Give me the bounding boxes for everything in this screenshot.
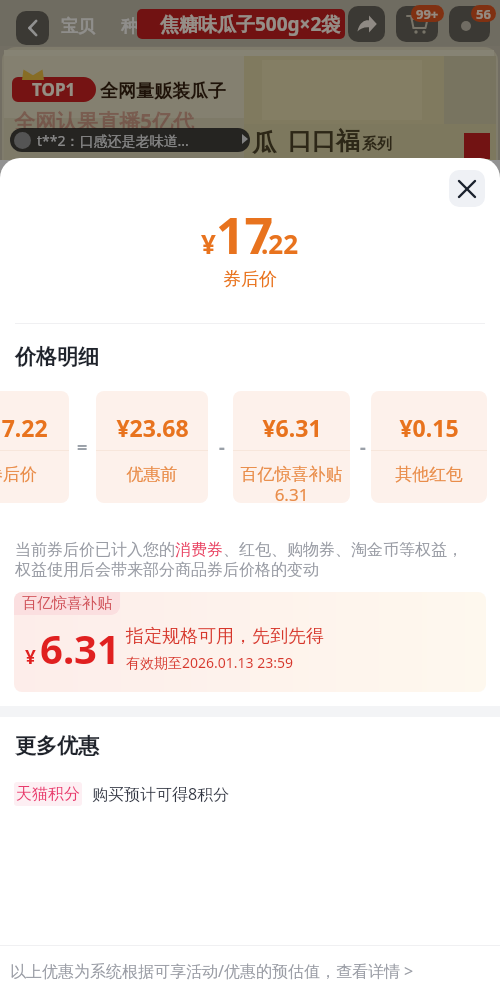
staticText: -: [360, 435, 366, 460]
staticText: ¥17.22: [0, 412, 48, 443]
staticText: ¥: [25, 644, 36, 670]
button[interactable]: 天猫积分: [16, 784, 80, 804]
staticText: .22: [261, 226, 299, 261]
button[interactable]: 百亿惊喜补贴: [14, 592, 486, 692]
button[interactable]: ¥0.15: [371, 391, 487, 503]
staticText: 56: [476, 5, 491, 22]
staticText: t**2：口感还是老味道...: [37, 131, 189, 150]
button[interactable]: ¥17.22: [0, 391, 69, 503]
staticText: TOP1: [32, 78, 76, 101]
staticText: 全网量贩装瓜子: [100, 80, 226, 103]
staticText: 焦糖味瓜子500g×2袋: [160, 11, 341, 37]
staticText: 6.31: [40, 621, 120, 675]
staticText: 百亿惊喜补贴: [22, 594, 112, 613]
staticText: 券后价: [223, 268, 277, 291]
staticText: 购买预计可得8积分: [92, 783, 230, 805]
staticText: 口口福: [288, 126, 360, 156]
staticText: 17: [216, 201, 274, 269]
staticText: =: [77, 435, 88, 460]
staticText: 瓜: [252, 128, 276, 158]
staticText: 其他红包: [371, 464, 487, 485]
staticText: 、红包、购物券、淘金币等权益，: [223, 540, 463, 560]
staticText: 权益使用后会带来部分商品券后价格的变动: [15, 560, 319, 580]
staticText: 天猫积分: [16, 784, 80, 804]
staticText: 百亿惊喜补贴 6.31: [233, 464, 350, 503]
button[interactable]: 返回: [16, 11, 49, 45]
staticText: 价格明细: [15, 344, 99, 370]
staticText: 优惠前: [96, 464, 208, 485]
staticText: ¥0.15: [399, 412, 459, 443]
staticText: 指定规格可用，先到先得: [126, 625, 324, 648]
staticText: ¥23.68: [116, 412, 189, 443]
staticText: 99+: [416, 5, 439, 22]
staticText: 更多优惠: [15, 733, 99, 759]
button[interactable]: 消息: [449, 6, 490, 42]
staticText: 全网认果直播5亿代: [14, 107, 195, 129]
button[interactable]: 分享: [348, 6, 385, 42]
button[interactable]: 关闭: [449, 170, 485, 207]
staticText: ¥: [201, 226, 216, 261]
button[interactable]: 购物车: [396, 6, 438, 42]
staticText: 当前券后价已计入您的: [15, 540, 175, 560]
staticText: 券后价: [0, 464, 69, 485]
staticText: 有效期至2026.01.13 23:59: [126, 653, 293, 672]
button[interactable]: ¥6.31: [233, 391, 350, 503]
button[interactable]: t**2：口感还是老味道...: [10, 128, 250, 152]
staticText: -: [219, 435, 225, 460]
button[interactable]: 以上优惠为系统根据可享活动/优惠的预估值，查看详情 >: [10, 960, 414, 982]
staticText: 种草: [121, 16, 155, 37]
staticText: ¥6.31: [262, 412, 322, 443]
button[interactable]: ¥23.68: [96, 391, 208, 503]
staticText: 系列: [362, 135, 392, 154]
staticText: 宝贝: [61, 16, 95, 37]
staticText: 消费券: [175, 540, 223, 560]
